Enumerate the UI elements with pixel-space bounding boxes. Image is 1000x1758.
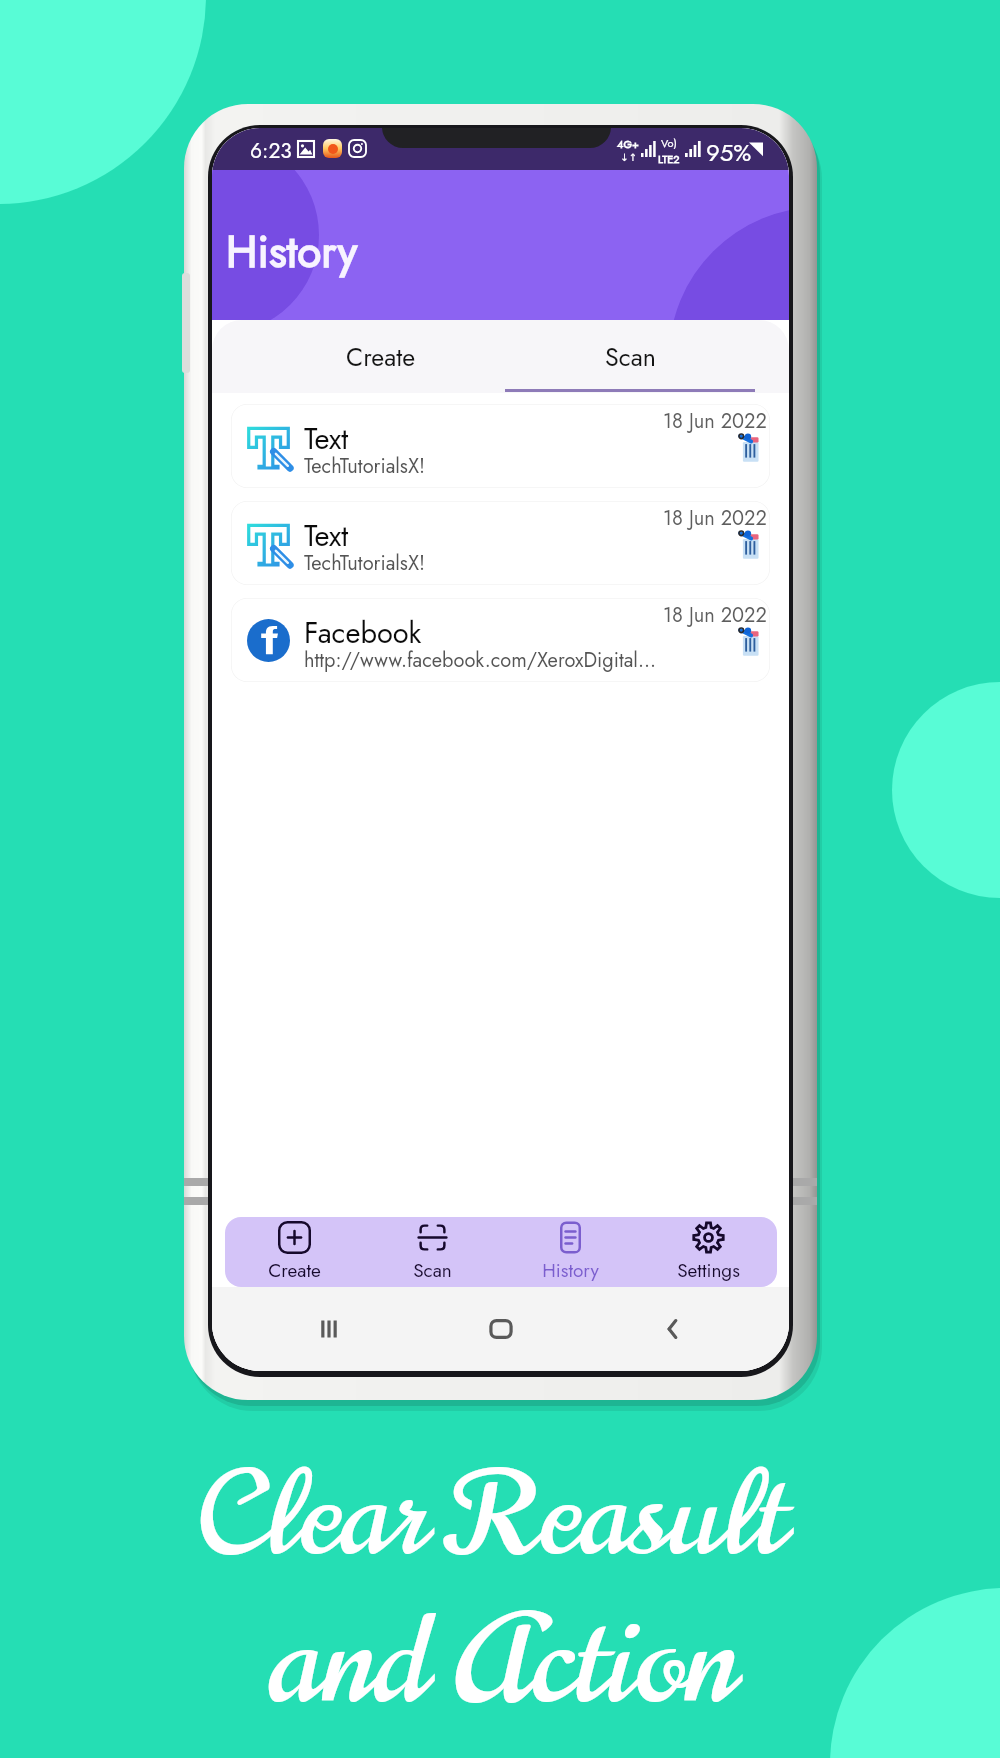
button[interactable]: Text xyxy=(231,404,770,488)
button[interactable]: Scan xyxy=(363,1217,501,1287)
button[interactable]: Scan xyxy=(505,320,755,393)
button[interactable]: Facebook xyxy=(231,598,770,682)
button[interactable]: Delete xyxy=(736,433,759,463)
staticText: and Action xyxy=(269,1576,736,1747)
button[interactable]: Delete xyxy=(736,530,759,560)
button[interactable]: Text xyxy=(231,501,770,585)
staticText: Text xyxy=(304,418,349,460)
button[interactable]: History xyxy=(501,1217,639,1287)
staticText: Clear Reasult xyxy=(196,1435,787,1596)
staticText: Scan xyxy=(413,1257,452,1284)
staticText: History xyxy=(542,1257,599,1284)
staticText: Create xyxy=(268,1257,321,1284)
staticText: TechTutorialsX! xyxy=(304,452,666,481)
staticText: Vo) xyxy=(661,135,677,151)
staticText: 4G+ xyxy=(617,136,639,152)
button[interactable]: Create xyxy=(225,1217,363,1287)
staticText: TechTutorialsX! xyxy=(304,549,666,578)
staticText: http://www.facebook.com/XeroxDigitalPrin… xyxy=(304,646,666,675)
staticText: 18 Jun 2022 xyxy=(663,504,767,533)
staticText: 95% xyxy=(706,135,752,170)
staticText: ↓↑ xyxy=(620,152,637,164)
staticText: History xyxy=(226,220,357,284)
staticText: 18 Jun 2022 xyxy=(663,407,767,436)
staticText: Scan xyxy=(605,339,656,375)
staticText: 18 Jun 2022 xyxy=(663,601,767,630)
button[interactable]: Delete xyxy=(736,627,759,657)
staticText: Facebook xyxy=(304,612,422,654)
staticText: 6:23 xyxy=(250,136,292,166)
button[interactable]: Settings xyxy=(639,1217,777,1287)
button[interactable]: Create xyxy=(256,320,505,393)
staticText: LTE2 xyxy=(658,151,680,167)
staticText: Settings xyxy=(677,1257,740,1284)
staticText: Create xyxy=(346,339,416,375)
staticText: Text xyxy=(304,515,349,557)
